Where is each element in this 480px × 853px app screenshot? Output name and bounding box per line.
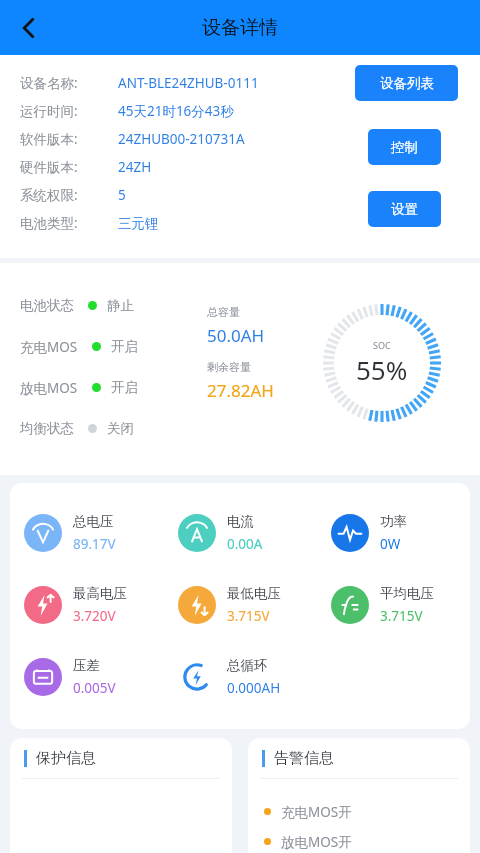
staticText: 24ZHUB00-210731A xyxy=(118,130,245,148)
staticText: 总循环 xyxy=(227,657,268,674)
staticText: 平均电压 xyxy=(380,585,434,602)
staticText: 保护信息 xyxy=(36,749,96,768)
staticText: 0.00A xyxy=(227,535,263,553)
staticText: 27.82AH xyxy=(207,379,274,402)
button[interactable]: 功率 xyxy=(331,497,470,569)
button[interactable]: 压差 xyxy=(24,641,164,713)
button[interactable]: 总循环 xyxy=(178,641,317,713)
button[interactable]: 控制 xyxy=(368,129,441,165)
staticText: 静止 xyxy=(107,297,134,314)
button[interactable]: 设置 xyxy=(368,191,441,227)
staticText: 设备列表 xyxy=(380,75,434,92)
staticText: 控制 xyxy=(391,139,418,156)
staticText: 关闭 xyxy=(107,420,134,437)
staticText: 三元锂 xyxy=(118,215,159,232)
button[interactable]: 保护信息 xyxy=(10,738,232,853)
staticText: 硬件版本: xyxy=(20,158,78,176)
button[interactable]: 最高电压 xyxy=(24,569,164,641)
staticText: ANT-BLE24ZHUB-0111 xyxy=(118,74,259,92)
staticText: 电池状态 xyxy=(20,297,74,314)
staticText: 设备详情 xyxy=(202,16,278,40)
staticText: 开启 xyxy=(111,338,138,355)
staticText: 50.0AH xyxy=(207,324,265,347)
staticText: 最低电压 xyxy=(227,585,281,602)
staticText: 55% xyxy=(356,352,408,387)
staticText: 45天21时16分43秒 xyxy=(118,102,234,120)
staticText: 电池类型: xyxy=(20,214,78,232)
staticText: 89.17V xyxy=(73,535,116,553)
button[interactable]: 最低电压 xyxy=(178,569,317,641)
staticText: 告警信息 xyxy=(274,749,334,768)
staticText: 3.720V xyxy=(73,607,116,625)
button[interactable]: 设备列表 xyxy=(355,65,458,101)
staticText: 设置 xyxy=(391,201,418,218)
staticText: 总容量 xyxy=(207,305,240,319)
staticText: 充电MOS xyxy=(20,338,78,356)
button[interactable]: Back xyxy=(6,5,52,51)
staticText: 总电压 xyxy=(73,513,114,530)
staticText: SOC xyxy=(373,339,391,351)
button[interactable]: 总电压 xyxy=(24,497,164,569)
staticText: 设备名称: xyxy=(20,74,78,92)
staticText: 充电MOS开 xyxy=(281,803,352,821)
staticText: 5 xyxy=(118,186,126,204)
staticText: 0W xyxy=(380,535,401,553)
staticText: 0.005V xyxy=(73,679,116,697)
staticText: 压差 xyxy=(73,657,100,674)
staticText: 均衡状态 xyxy=(20,420,74,437)
button[interactable]: 平均电压 xyxy=(331,569,470,641)
staticText: 运行时间: xyxy=(20,102,78,120)
button[interactable]: 电流 xyxy=(178,497,317,569)
staticText: 3.715V xyxy=(380,607,423,625)
staticText: 24ZH xyxy=(118,158,152,176)
staticText: 最高电压 xyxy=(73,585,127,602)
staticText: 0.000AH xyxy=(227,679,281,697)
staticText: 放电MOS开 xyxy=(281,833,352,851)
staticText: 电流 xyxy=(227,513,254,530)
staticText: 软件版本: xyxy=(20,130,78,148)
staticText: 3.715V xyxy=(227,607,270,625)
staticText: 剩余容量 xyxy=(207,360,251,374)
staticText: 功率 xyxy=(380,513,407,530)
button[interactable]: 告警信息 xyxy=(248,738,470,853)
staticText: 开启 xyxy=(111,379,138,396)
staticText: 系统权限: xyxy=(20,186,78,204)
staticText: 放电MOS xyxy=(20,379,78,397)
